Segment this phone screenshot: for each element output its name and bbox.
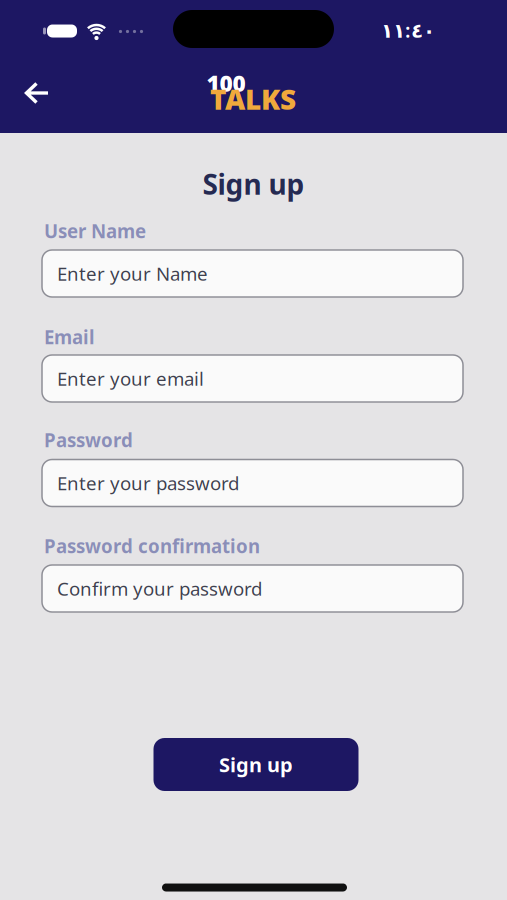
staticText: ١١:٤٠ — [381, 17, 435, 43]
staticText: Email — [44, 325, 95, 349]
staticText: Sign up — [202, 165, 304, 203]
button[interactable]: Confirm your password — [42, 565, 463, 612]
staticText: Confirm your password — [57, 576, 262, 601]
staticText: Sign up — [219, 751, 293, 778]
button[interactable]: Sign up — [153, 738, 358, 791]
button[interactable]: Back — [15, 71, 59, 115]
staticText: Enter your password — [57, 471, 239, 495]
staticText: User Name — [44, 219, 146, 243]
button[interactable]: Enter your Name — [42, 250, 463, 297]
button[interactable]: Enter your password — [42, 459, 463, 506]
staticText: Password confirmation — [44, 534, 260, 558]
button[interactable]: Enter your email — [42, 355, 463, 402]
staticText: 100 — [206, 68, 245, 98]
staticText: Enter your Name — [57, 261, 208, 286]
staticText: TALKS — [210, 80, 296, 118]
staticText: Enter your email — [57, 366, 204, 391]
staticText: Password — [44, 428, 133, 452]
